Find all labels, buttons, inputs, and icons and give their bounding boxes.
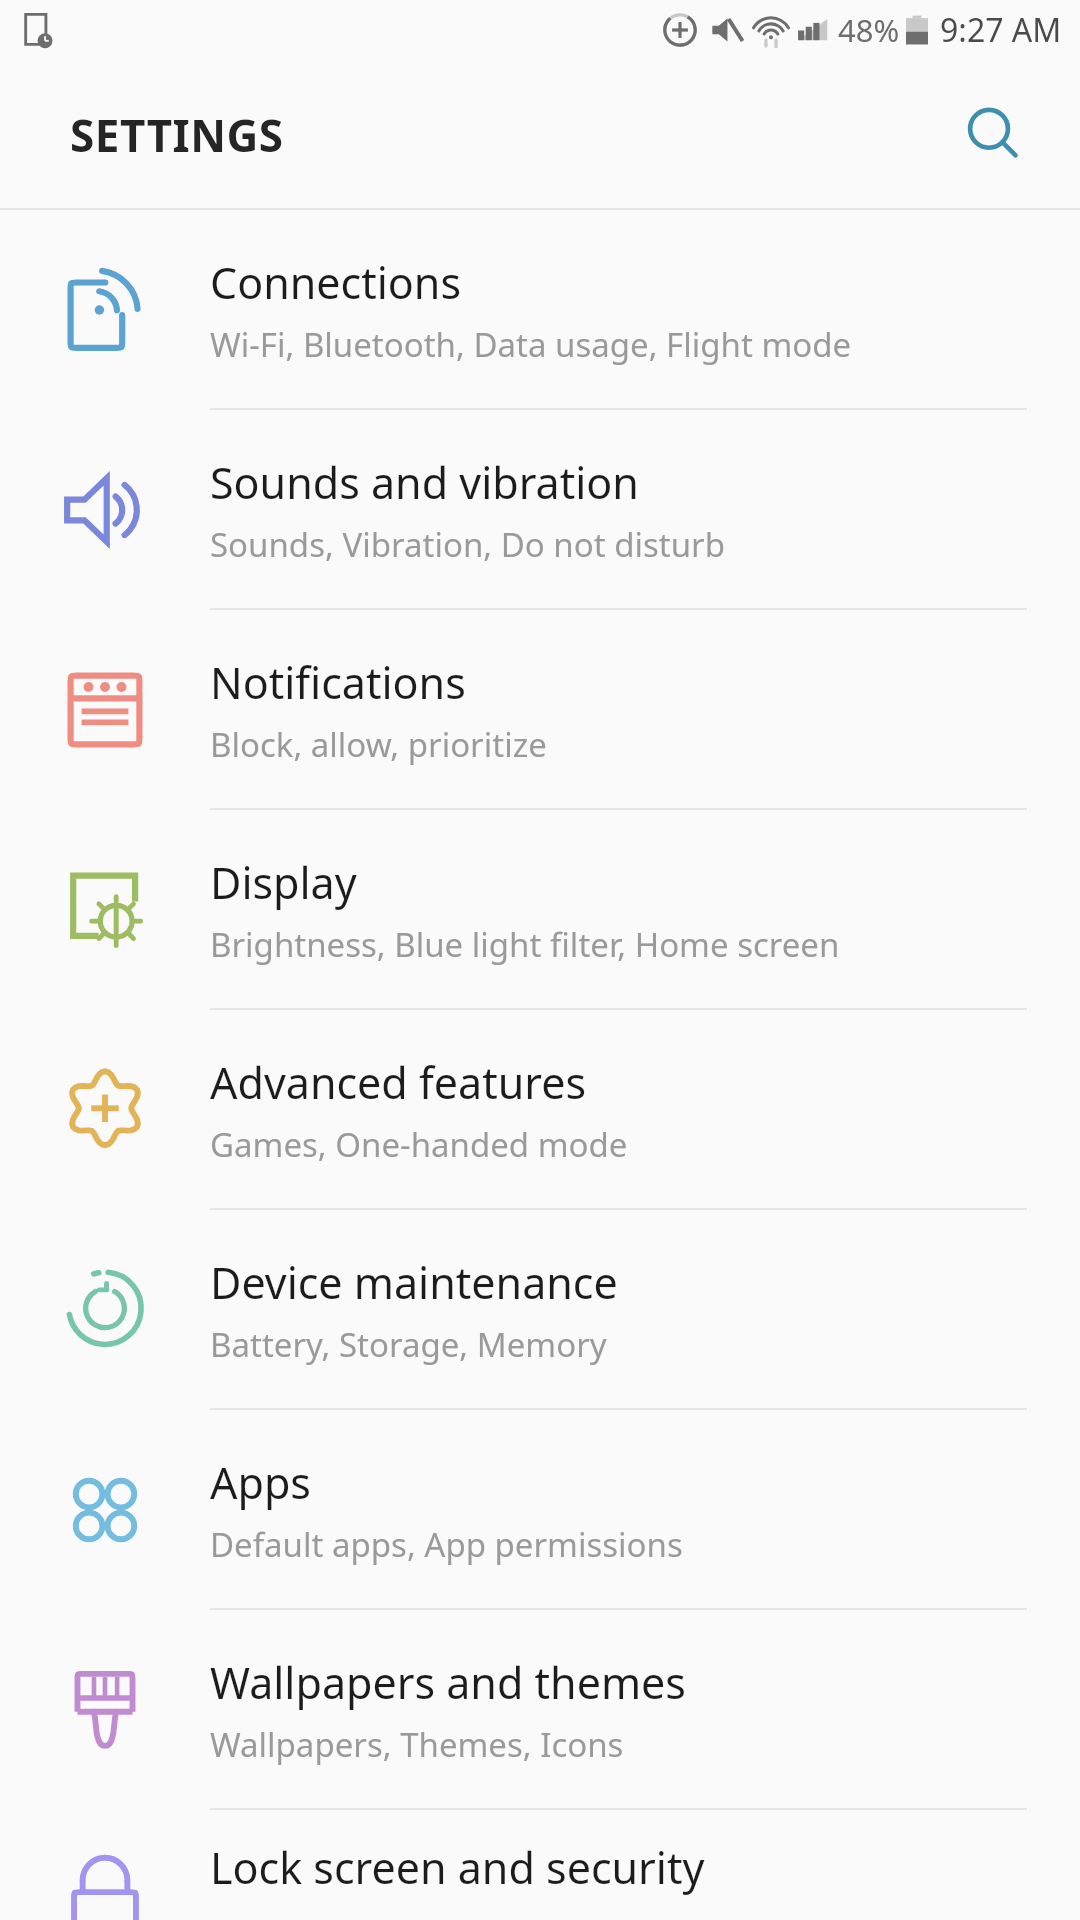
staticText: SETTINGS: [70, 105, 284, 165]
staticText: Wallpapers and themes: [210, 1653, 686, 1712]
button[interactable]: Connections: [0, 210, 1080, 410]
button[interactable]: Advanced features: [0, 1010, 1080, 1210]
staticText: Device maintenance: [210, 1253, 618, 1312]
staticText: Display: [210, 853, 357, 912]
staticText: Wallpapers, Themes, Icons: [210, 1722, 624, 1767]
button[interactable]: Wallpapers and themes: [0, 1610, 1080, 1810]
button[interactable]: Search: [946, 87, 1042, 183]
staticText: Connections: [210, 253, 462, 312]
button[interactable]: Display: [0, 810, 1080, 1010]
button[interactable]: Device maintenance: [0, 1210, 1080, 1410]
button[interactable]: Apps: [0, 1410, 1080, 1610]
button[interactable]: Notifications: [0, 610, 1080, 810]
staticText: Sounds, Vibration, Do not disturb: [210, 522, 726, 567]
staticText: Games, One-handed mode: [210, 1122, 628, 1167]
staticText: Lock screen and security: [210, 1838, 705, 1897]
button[interactable]: Sounds and vibration: [0, 410, 1080, 610]
staticText: Advanced features: [210, 1053, 586, 1112]
staticText: Apps: [210, 1453, 311, 1512]
staticText: Wi-Fi, Bluetooth, Data usage, Flight mod…: [210, 322, 852, 367]
staticText: Brightness, Blue light filter, Home scre…: [210, 922, 840, 967]
staticText: 48%: [838, 9, 900, 51]
staticText: Default apps, App permissions: [210, 1522, 683, 1567]
staticText: Sounds and vibration: [210, 453, 639, 512]
staticText: Block, allow, prioritize: [210, 722, 547, 767]
staticText: Notifications: [210, 653, 466, 712]
staticText: 9:27 AM: [940, 8, 1062, 52]
button[interactable]: Lock screen and security: [0, 1810, 1080, 1920]
staticText: Battery, Storage, Memory: [210, 1322, 607, 1367]
